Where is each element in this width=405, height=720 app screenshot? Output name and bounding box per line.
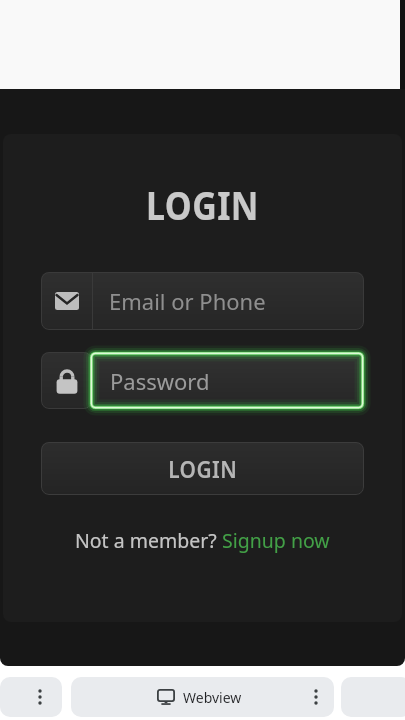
button[interactable]: Webview xyxy=(71,677,334,717)
button[interactable]: Password xyxy=(90,352,364,409)
staticText: Password xyxy=(110,366,210,396)
button[interactable]: Signup now xyxy=(222,527,330,554)
staticText: Webview xyxy=(183,688,242,707)
staticText: Email or Phone xyxy=(109,286,266,316)
button[interactable] xyxy=(0,677,62,717)
button[interactable]: Email or Phone xyxy=(41,272,364,330)
button[interactable]: LOGIN xyxy=(41,442,364,495)
staticText: LOGIN xyxy=(30,177,375,231)
staticText: LOGIN xyxy=(168,452,238,485)
staticText: Not a member? xyxy=(75,527,222,554)
